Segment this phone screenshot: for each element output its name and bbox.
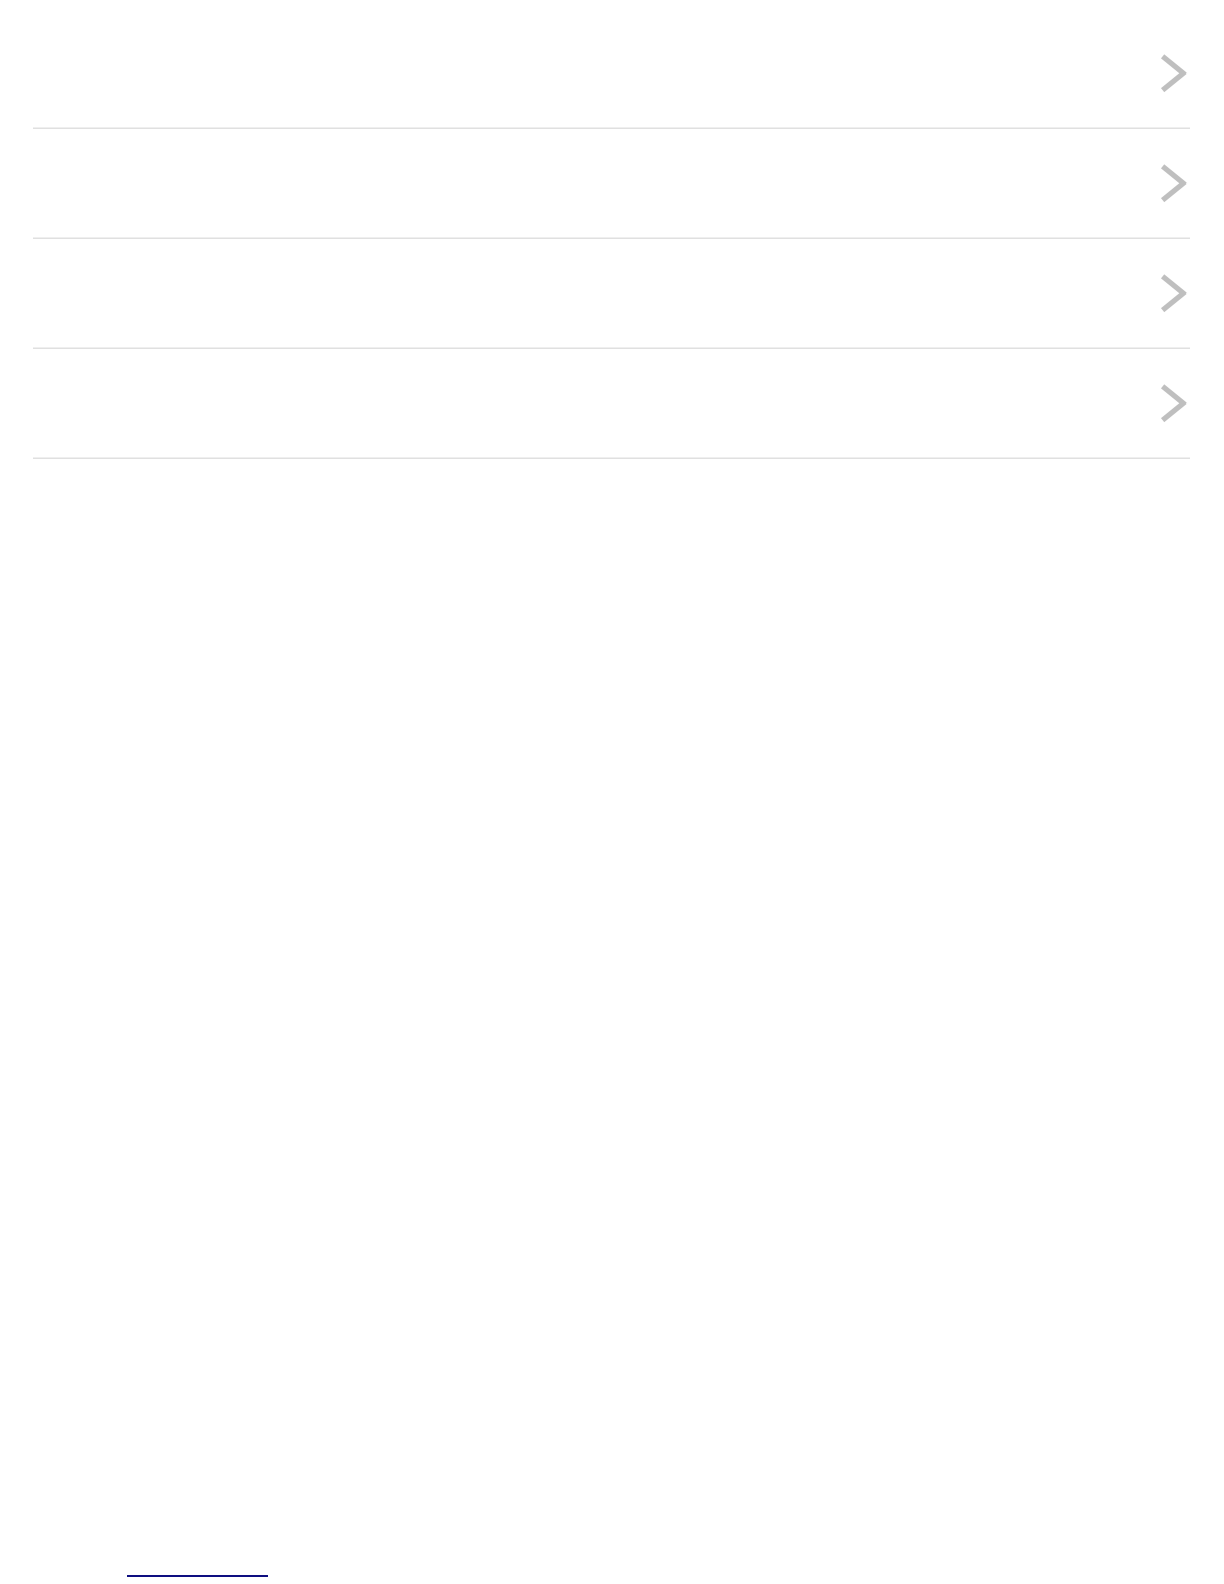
button[interactable]: Item 4 (33, 349, 1190, 457)
button[interactable]: Item 3 (33, 239, 1190, 347)
button[interactable]: Footer link (127, 1555, 268, 1577)
button[interactable]: Item 2 (33, 129, 1190, 237)
button[interactable]: Item 1 (33, 19, 1190, 127)
